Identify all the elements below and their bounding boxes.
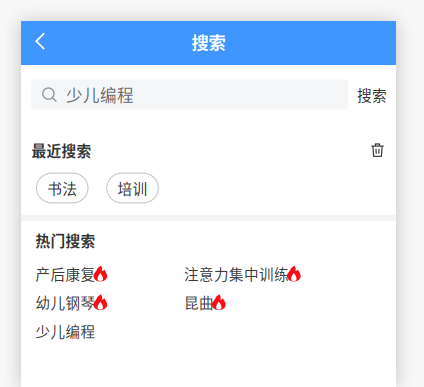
staticText: 培训: [117, 177, 147, 199]
staticText: 少儿编程: [36, 320, 96, 341]
staticText: 书法: [47, 177, 77, 199]
button[interactable]: 清空最近搜索: [364, 137, 390, 163]
button[interactable]: 搜索: [353, 79, 391, 110]
button[interactable]: 产后康复: [36, 259, 184, 288]
staticText: 最近搜索: [31, 139, 91, 161]
button[interactable]: 书法: [36, 173, 88, 203]
staticText: 搜索: [191, 29, 225, 54]
staticText: 昆曲: [184, 292, 214, 313]
button[interactable]: 注意力集中训练: [184, 259, 344, 288]
button[interactable]: 培训: [107, 173, 158, 203]
button[interactable]: 昆曲: [184, 288, 344, 316]
staticText: 幼儿钢琴: [36, 292, 96, 313]
staticText: 热门搜索: [36, 230, 96, 251]
button[interactable]: 幼儿钢琴: [36, 288, 184, 316]
staticText: 注意力集中训练: [184, 263, 289, 284]
staticText: 产后康复: [36, 263, 96, 284]
button[interactable]: 返回: [23, 21, 57, 61]
staticText: 少儿编程: [66, 82, 134, 106]
button[interactable]: 少儿编程: [36, 316, 184, 345]
staticText: 搜索: [357, 84, 387, 105]
